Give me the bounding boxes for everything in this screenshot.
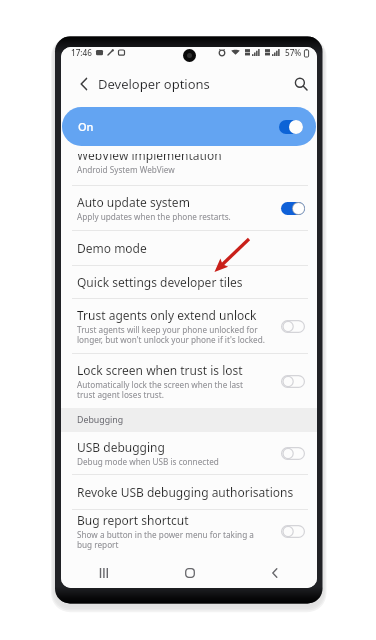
staticText: Show a button in the power menu for taki… <box>77 529 254 551</box>
button[interactable]: Demo mode <box>61 231 317 265</box>
staticText: Bug report shortcut <box>77 512 189 528</box>
staticText: Android System WebView <box>77 164 175 175</box>
staticText: 17:46 <box>71 47 92 58</box>
staticText: Trust agents will keep your phone unlock… <box>77 324 265 346</box>
staticText: 57% <box>285 47 302 58</box>
button[interactable]: Home <box>147 558 232 588</box>
button[interactable]: USB debugging <box>61 432 317 474</box>
button[interactable]: Revoke USB debugging authorisations <box>61 475 317 509</box>
staticText: Auto update system <box>77 194 190 210</box>
button[interactable]: Back <box>73 73 94 94</box>
staticText: Apply updates when the phone restarts. <box>77 211 231 222</box>
button[interactable]: Back <box>232 558 317 588</box>
button[interactable]: Quick settings developer tiles <box>61 266 317 298</box>
staticText: Lock screen when trust is lost <box>77 362 243 378</box>
staticText: USB debugging <box>77 439 165 455</box>
button[interactable]: Recents <box>61 558 147 588</box>
staticText: Debugging <box>77 414 124 426</box>
staticText: Trust agents only extend unlock <box>77 307 257 323</box>
staticText: Automatically lock the screen when the l… <box>77 379 243 401</box>
staticText: Developer options <box>98 75 210 93</box>
staticText: On <box>78 119 94 134</box>
button[interactable]: Lock screen when trust is lost <box>61 354 317 408</box>
button[interactable]: Auto update system <box>61 186 317 230</box>
staticText: Quick settings developer tiles <box>77 274 243 290</box>
staticText: Debug mode when USB is connected <box>77 456 219 467</box>
button[interactable]: Bug report shortcut <box>61 510 317 552</box>
staticText: WebView implementation <box>77 154 222 163</box>
button[interactable]: On <box>62 107 316 146</box>
button[interactable]: Search <box>290 73 311 94</box>
staticText: Demo mode <box>77 240 147 256</box>
button[interactable]: Trust agents only extend unlock <box>61 299 317 353</box>
staticText: Revoke USB debugging authorisations <box>77 484 294 500</box>
